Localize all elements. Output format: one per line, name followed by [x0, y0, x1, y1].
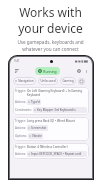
button[interactable]: Trigger: — [13, 87, 89, 115]
staticText: 9:41 — [14, 59, 20, 63]
button[interactable]: Gaming — [60, 77, 76, 85]
staticText: your device — [18, 20, 83, 36]
staticText: Trigger: — [15, 119, 26, 123]
staticText: Navigation — [18, 79, 34, 83]
staticText: On Left (Gaming Keyboard) + In Gaming Ke… — [27, 89, 87, 97]
staticText: Actions: — [15, 100, 26, 104]
button[interactable]: More options — [83, 68, 89, 74]
button[interactable]: Navigation — [13, 77, 36, 85]
staticText: Actions: — [15, 152, 26, 156]
staticText: Actions: — [15, 126, 26, 130]
button[interactable]: Running — [35, 67, 60, 75]
staticText: Key Mapper 3rd Keyboard is chosen — [37, 108, 86, 112]
button[interactable]: Settings — [75, 67, 83, 75]
staticText: whatever you can connect — [22, 46, 79, 52]
staticText: Type'd — [31, 100, 40, 104]
staticText: Input KEYCODE_SPACE • Repeat until relea… — [31, 152, 86, 156]
button[interactable]: Menu — [13, 67, 21, 75]
staticText: Long press Back (Q) • Wired Mount — [27, 119, 87, 123]
staticText: Options: — [15, 134, 27, 138]
staticText: Button 4 (Wireless Controller) — [27, 145, 87, 149]
staticText: Gaming — [62, 79, 74, 83]
staticText: Constraints: — [15, 108, 32, 112]
staticText: Trigger: — [15, 145, 26, 149]
staticText: Use gamepads, keyboards and — [17, 39, 84, 45]
button[interactable]: Unfocused — [38, 77, 58, 85]
staticText: Works with — [19, 4, 82, 20]
staticText: Unfocused — [40, 79, 56, 83]
staticText: Vibrate — [32, 134, 42, 138]
staticText: Trigger: — [15, 89, 26, 93]
staticText: Screenshot — [31, 126, 47, 130]
button[interactable]: Trigger: — [13, 117, 89, 141]
button[interactable]: Trigger: — [13, 143, 89, 159]
button[interactable]: Filter — [78, 78, 85, 85]
staticText: Running — [43, 69, 57, 73]
